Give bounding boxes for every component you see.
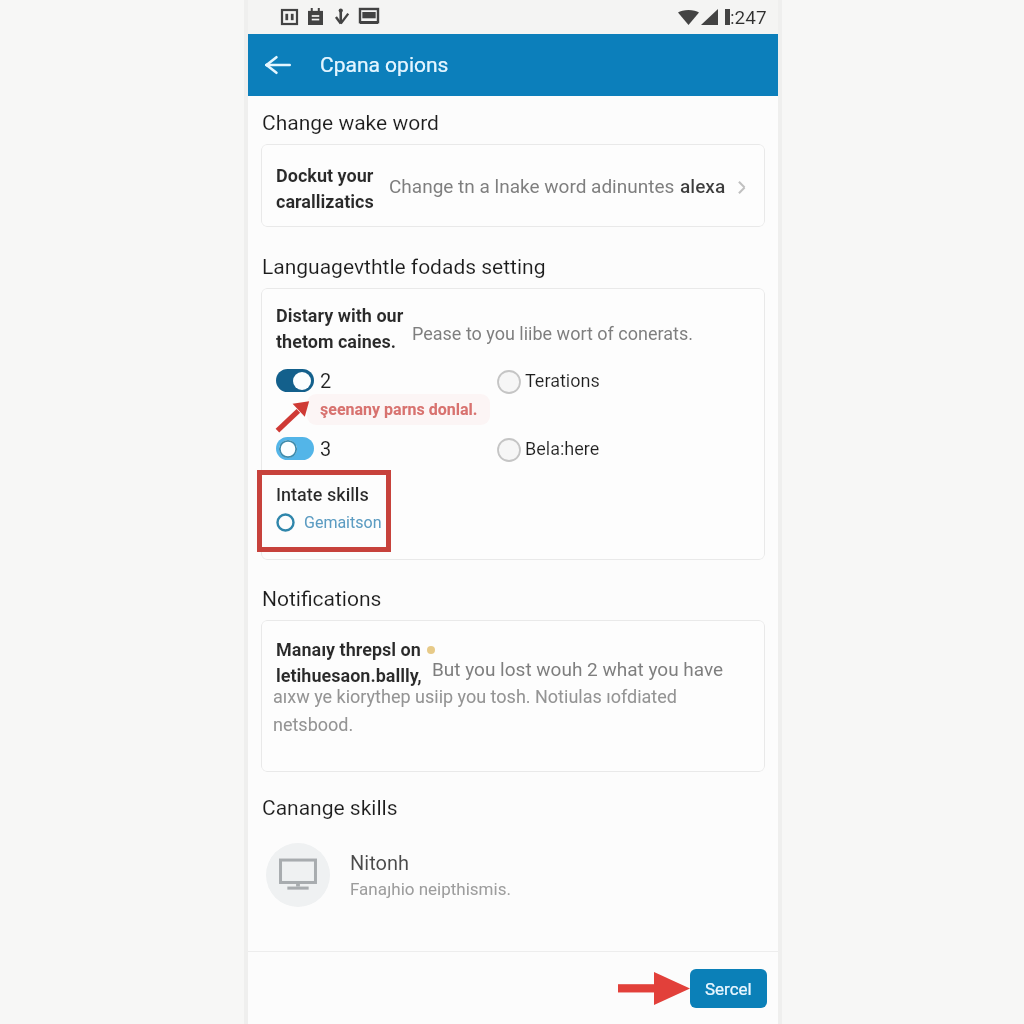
staticText: Terations	[525, 370, 600, 391]
button[interactable]: Option	[497, 370, 521, 394]
button[interactable]: Switch off	[276, 437, 314, 460]
staticText: alexa	[680, 175, 726, 197]
button[interactable]: Intate skills	[276, 484, 382, 532]
button[interactable]: Nitonh	[266, 843, 511, 907]
staticText: Distary with our thetom caines.	[276, 305, 404, 352]
staticText: aıxw ye kiorythep usiip you tosh. Notiul…	[273, 686, 677, 707]
staticText: Cpana opions	[320, 53, 449, 78]
staticText: 2	[320, 369, 332, 392]
staticText: Dockut your carallizatics	[276, 165, 374, 212]
staticText: But you lost wouh 2 what you have	[432, 658, 724, 680]
staticText: Intate skills	[276, 484, 369, 505]
staticText: Fanaȷhio neipthismis.	[350, 879, 511, 899]
staticText: 3	[320, 437, 332, 460]
button[interactable]: Option	[497, 438, 521, 462]
staticText: netsbood.	[273, 714, 354, 735]
staticText: Languagevthtle fodads setting	[262, 255, 546, 280]
staticText: Canange skills	[262, 796, 398, 821]
staticText: Sercel	[705, 979, 752, 999]
staticText: Nitonh	[350, 851, 409, 874]
staticText: Bela:here	[525, 438, 600, 459]
staticText: şeenany parns donlal.	[320, 400, 478, 419]
button[interactable]: Back	[252, 39, 304, 91]
staticText: Notifications	[262, 587, 382, 612]
button[interactable]: Switch on	[276, 369, 314, 392]
staticText: Pease to you liibe wort of conerats.	[412, 323, 693, 344]
staticText: Manaıy threpsl on lеtihuesaon.ballly,	[276, 639, 422, 686]
staticText: Change tn a lnake word adinuntes	[389, 175, 680, 197]
staticText: Change wake word	[262, 111, 439, 136]
staticText: :247	[730, 6, 767, 28]
button[interactable]: Change wake word	[261, 144, 765, 227]
button[interactable]: Sercel	[690, 969, 767, 1008]
staticText: Gemaitson	[304, 513, 382, 532]
